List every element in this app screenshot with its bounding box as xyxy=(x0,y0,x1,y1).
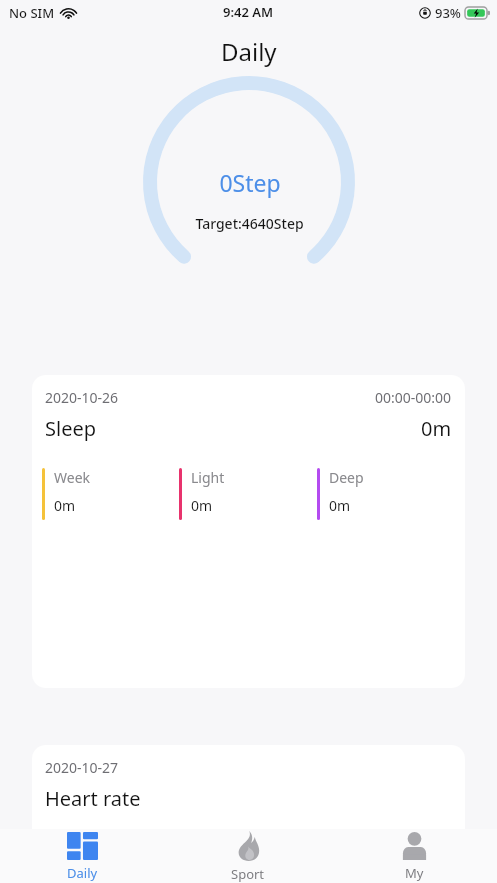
staticText: Sleep xyxy=(45,415,96,442)
staticText: Deep xyxy=(329,468,364,487)
staticText: My xyxy=(405,864,424,882)
staticText: Week xyxy=(54,468,91,487)
staticText: 0m xyxy=(191,496,213,515)
button[interactable]: Daily xyxy=(0,829,165,883)
button[interactable]: Sport xyxy=(165,829,331,883)
staticText: 0m xyxy=(329,496,351,515)
staticText: No SIM xyxy=(9,4,55,22)
staticText: 0m xyxy=(421,415,452,442)
button[interactable]: 2020-10-26 xyxy=(32,375,465,688)
staticText: 93% xyxy=(435,4,461,22)
staticText: 0m xyxy=(54,496,76,515)
button[interactable]: My xyxy=(331,829,497,883)
staticText: Target:4640Step xyxy=(195,214,304,233)
staticText: 2020-10-26 xyxy=(45,388,119,407)
staticText: Light xyxy=(191,468,225,487)
staticText: 00:00-00:00 xyxy=(375,388,452,407)
staticText: Heart rate xyxy=(45,785,141,812)
staticText: 2020-10-27 xyxy=(45,758,119,777)
staticText: Daily xyxy=(67,864,98,882)
staticText: 0Step xyxy=(219,167,281,198)
staticText: 9:42 AM xyxy=(223,3,274,21)
staticText: Sport xyxy=(231,865,265,883)
staticText: Daily xyxy=(221,35,277,68)
button[interactable]: 2020-10-27 xyxy=(32,745,465,875)
